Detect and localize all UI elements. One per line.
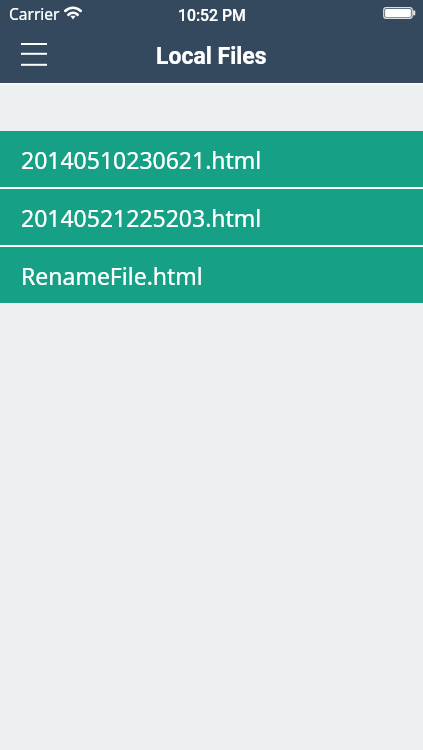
staticText: 10:52 PM [178, 6, 246, 25]
staticText: 20140521225203.html [21, 202, 262, 233]
staticText: Local Files [156, 43, 267, 70]
staticText: RenameFile.html [21, 260, 203, 291]
button[interactable]: 20140510230621.html [0, 131, 423, 187]
button[interactable]: 20140521225203.html [0, 189, 423, 245]
button[interactable]: Open navigation menu [10, 32, 58, 76]
other: Wi-Fi signal [62, 3, 84, 23]
button[interactable]: RenameFile.html [0, 247, 423, 303]
staticText: Carrier [9, 3, 60, 24]
other: Battery full [381, 4, 419, 24]
staticText: 20140510230621.html [21, 144, 262, 175]
